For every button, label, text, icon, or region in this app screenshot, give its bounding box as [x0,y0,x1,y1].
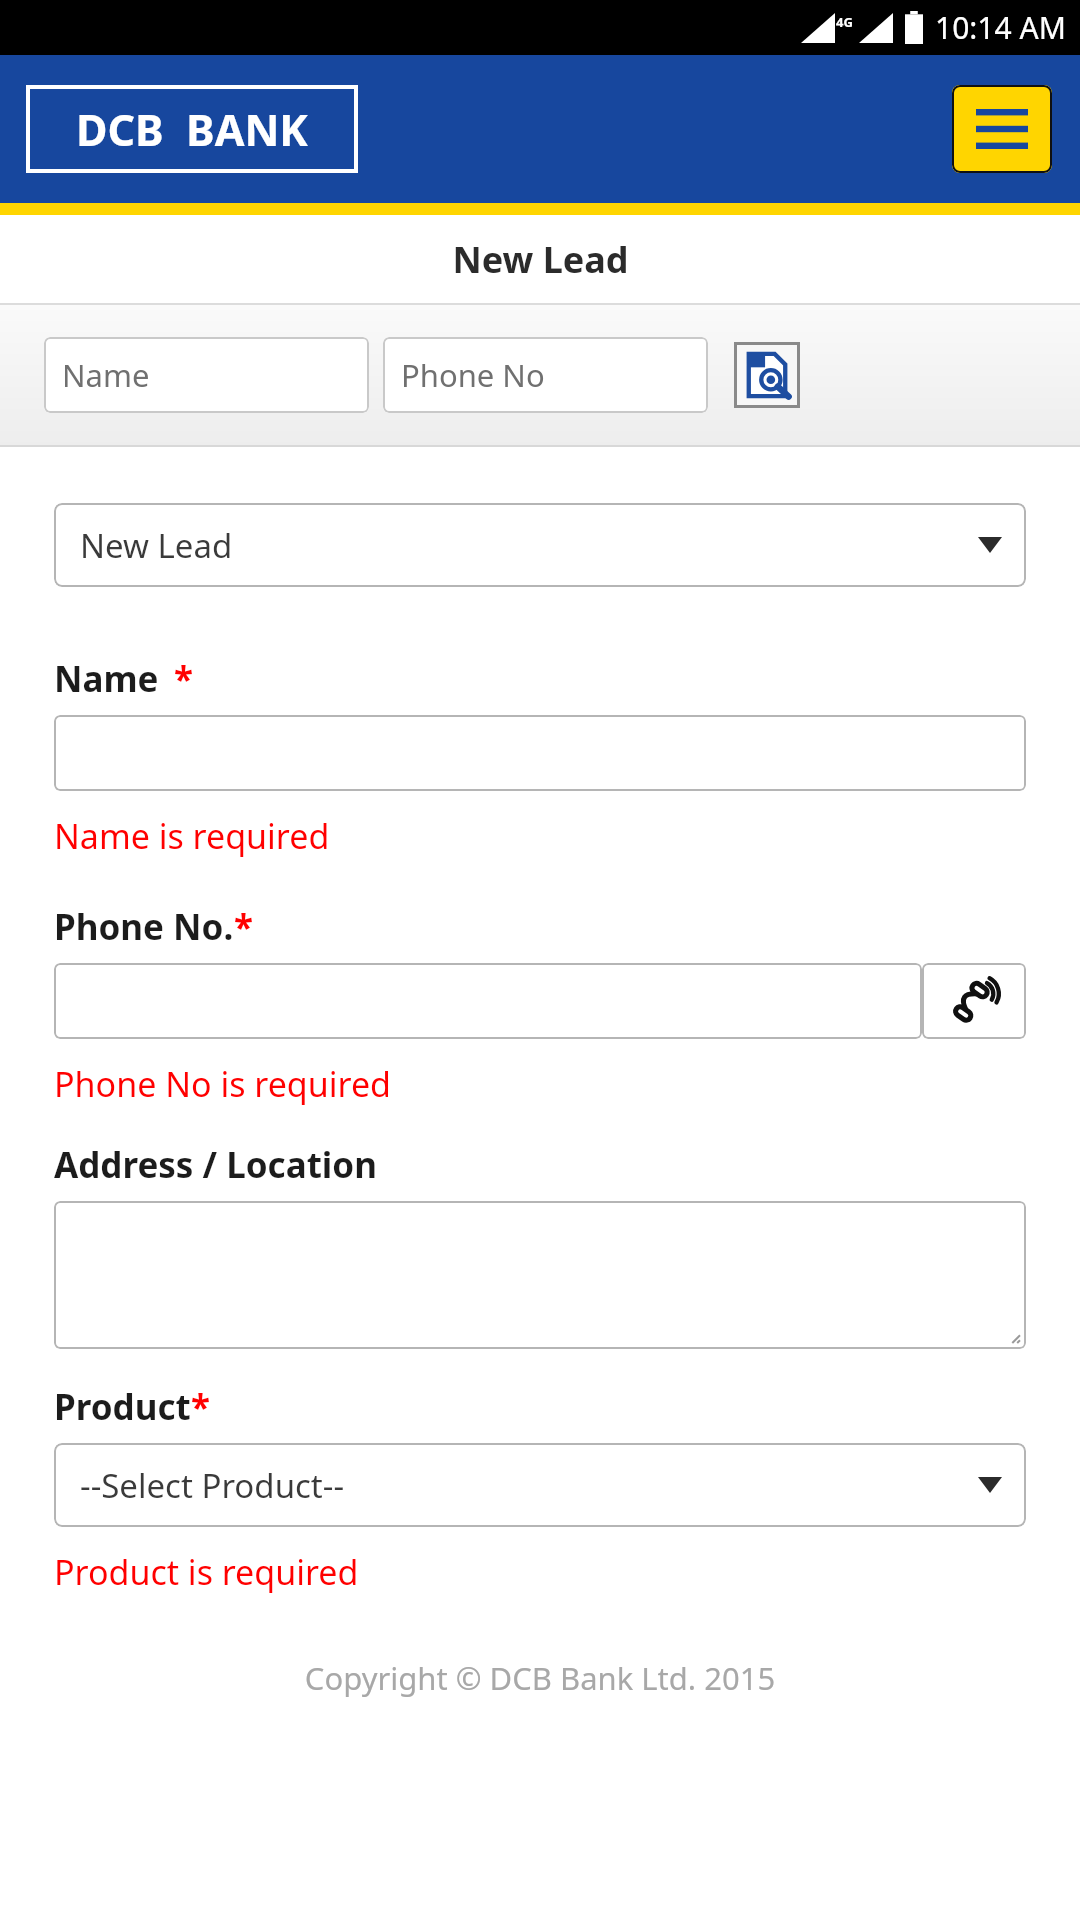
button[interactable]: Name [44,337,369,413]
button[interactable]: Open navigation menu [952,85,1052,173]
staticText: Name [54,655,168,703]
staticText: 4G [836,13,853,31]
button[interactable] [54,1201,1026,1349]
staticText: Name is required [54,813,330,859]
button[interactable] [54,963,922,1039]
staticText: Copyright © DCB Bank Ltd. 2015 [0,1657,1080,1699]
staticText: Address / Location [54,1141,377,1189]
staticText: Product [54,1383,191,1431]
button[interactable] [54,715,1026,791]
staticText: 10:14 AM [935,7,1066,48]
staticText: Product is required [54,1549,359,1595]
staticText: * [234,903,253,951]
staticText: New Lead [452,235,629,284]
staticText: New Lead [80,523,233,568]
button[interactable]: --Select Product-- [54,1443,1026,1527]
staticText: Phone No. [54,903,234,951]
staticText: DCB BANK [76,100,308,159]
staticText: Phone No is required [54,1061,392,1107]
staticText: * [191,1383,210,1431]
staticText: * [174,655,193,703]
staticText: Name [62,354,150,396]
staticText: Phone No [401,354,545,396]
button[interactable]: DCB BANK [26,85,358,173]
button[interactable]: New Lead [54,503,1026,587]
button[interactable]: Search lead [734,342,800,408]
staticText: --Select Product-- [80,1463,345,1508]
button[interactable]: Call phone number [922,963,1026,1039]
button[interactable]: Phone No [383,337,708,413]
